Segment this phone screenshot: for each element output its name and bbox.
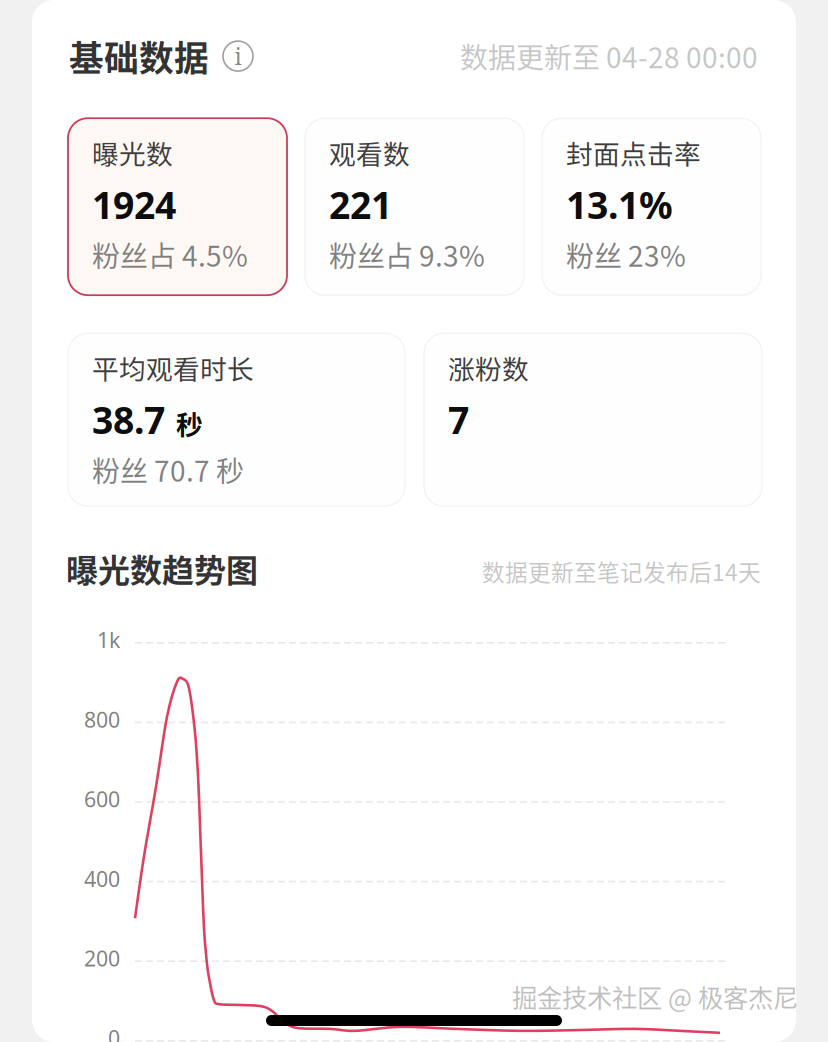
staticText: 7: [448, 395, 469, 444]
staticText: 数据更新至 04-28 00:00: [460, 36, 758, 76]
staticText: 曝光数趋势图: [66, 545, 258, 591]
staticText: 掘金技术社区 @ 极客杰尼: [512, 978, 798, 1015]
staticText: 数据更新至笔记发布后14天: [482, 555, 761, 587]
staticText: 200: [84, 944, 120, 972]
staticText: 粉丝 23%: [566, 234, 686, 275]
staticText: 800: [84, 705, 120, 733]
staticText: 基础数据: [69, 31, 209, 81]
staticText: 221: [329, 180, 392, 229]
staticText: 粉丝占 9.3%: [329, 234, 485, 275]
staticText: 600: [84, 785, 120, 813]
button[interactable]: 封面点击率: [542, 118, 761, 295]
staticText: 封面点击率: [566, 133, 701, 172]
staticText: 0: [108, 1024, 120, 1042]
staticText: 涨粉数: [448, 348, 529, 387]
staticText: 秒: [176, 404, 203, 442]
staticText: 观看数: [329, 133, 410, 172]
staticText: 400: [84, 864, 120, 893]
staticText: 1k: [97, 626, 120, 654]
button[interactable]: 基础数据: [69, 31, 253, 81]
button[interactable]: 涨粉数: [424, 333, 762, 506]
staticText: 平均观看时长: [92, 348, 254, 387]
staticText: i: [234, 41, 241, 72]
staticText: 1924: [92, 180, 176, 229]
button[interactable]: 曝光数: [68, 118, 287, 295]
button[interactable]: 观看数: [305, 118, 524, 295]
staticText: 曝光数: [92, 133, 173, 172]
staticText: 38.7: [92, 395, 165, 444]
staticText: 13.1%: [566, 180, 673, 229]
staticText: 粉丝占 4.5%: [92, 234, 248, 275]
button[interactable]: 平均观看时长: [68, 333, 405, 506]
staticText: 粉丝 70.7 秒: [92, 449, 244, 490]
